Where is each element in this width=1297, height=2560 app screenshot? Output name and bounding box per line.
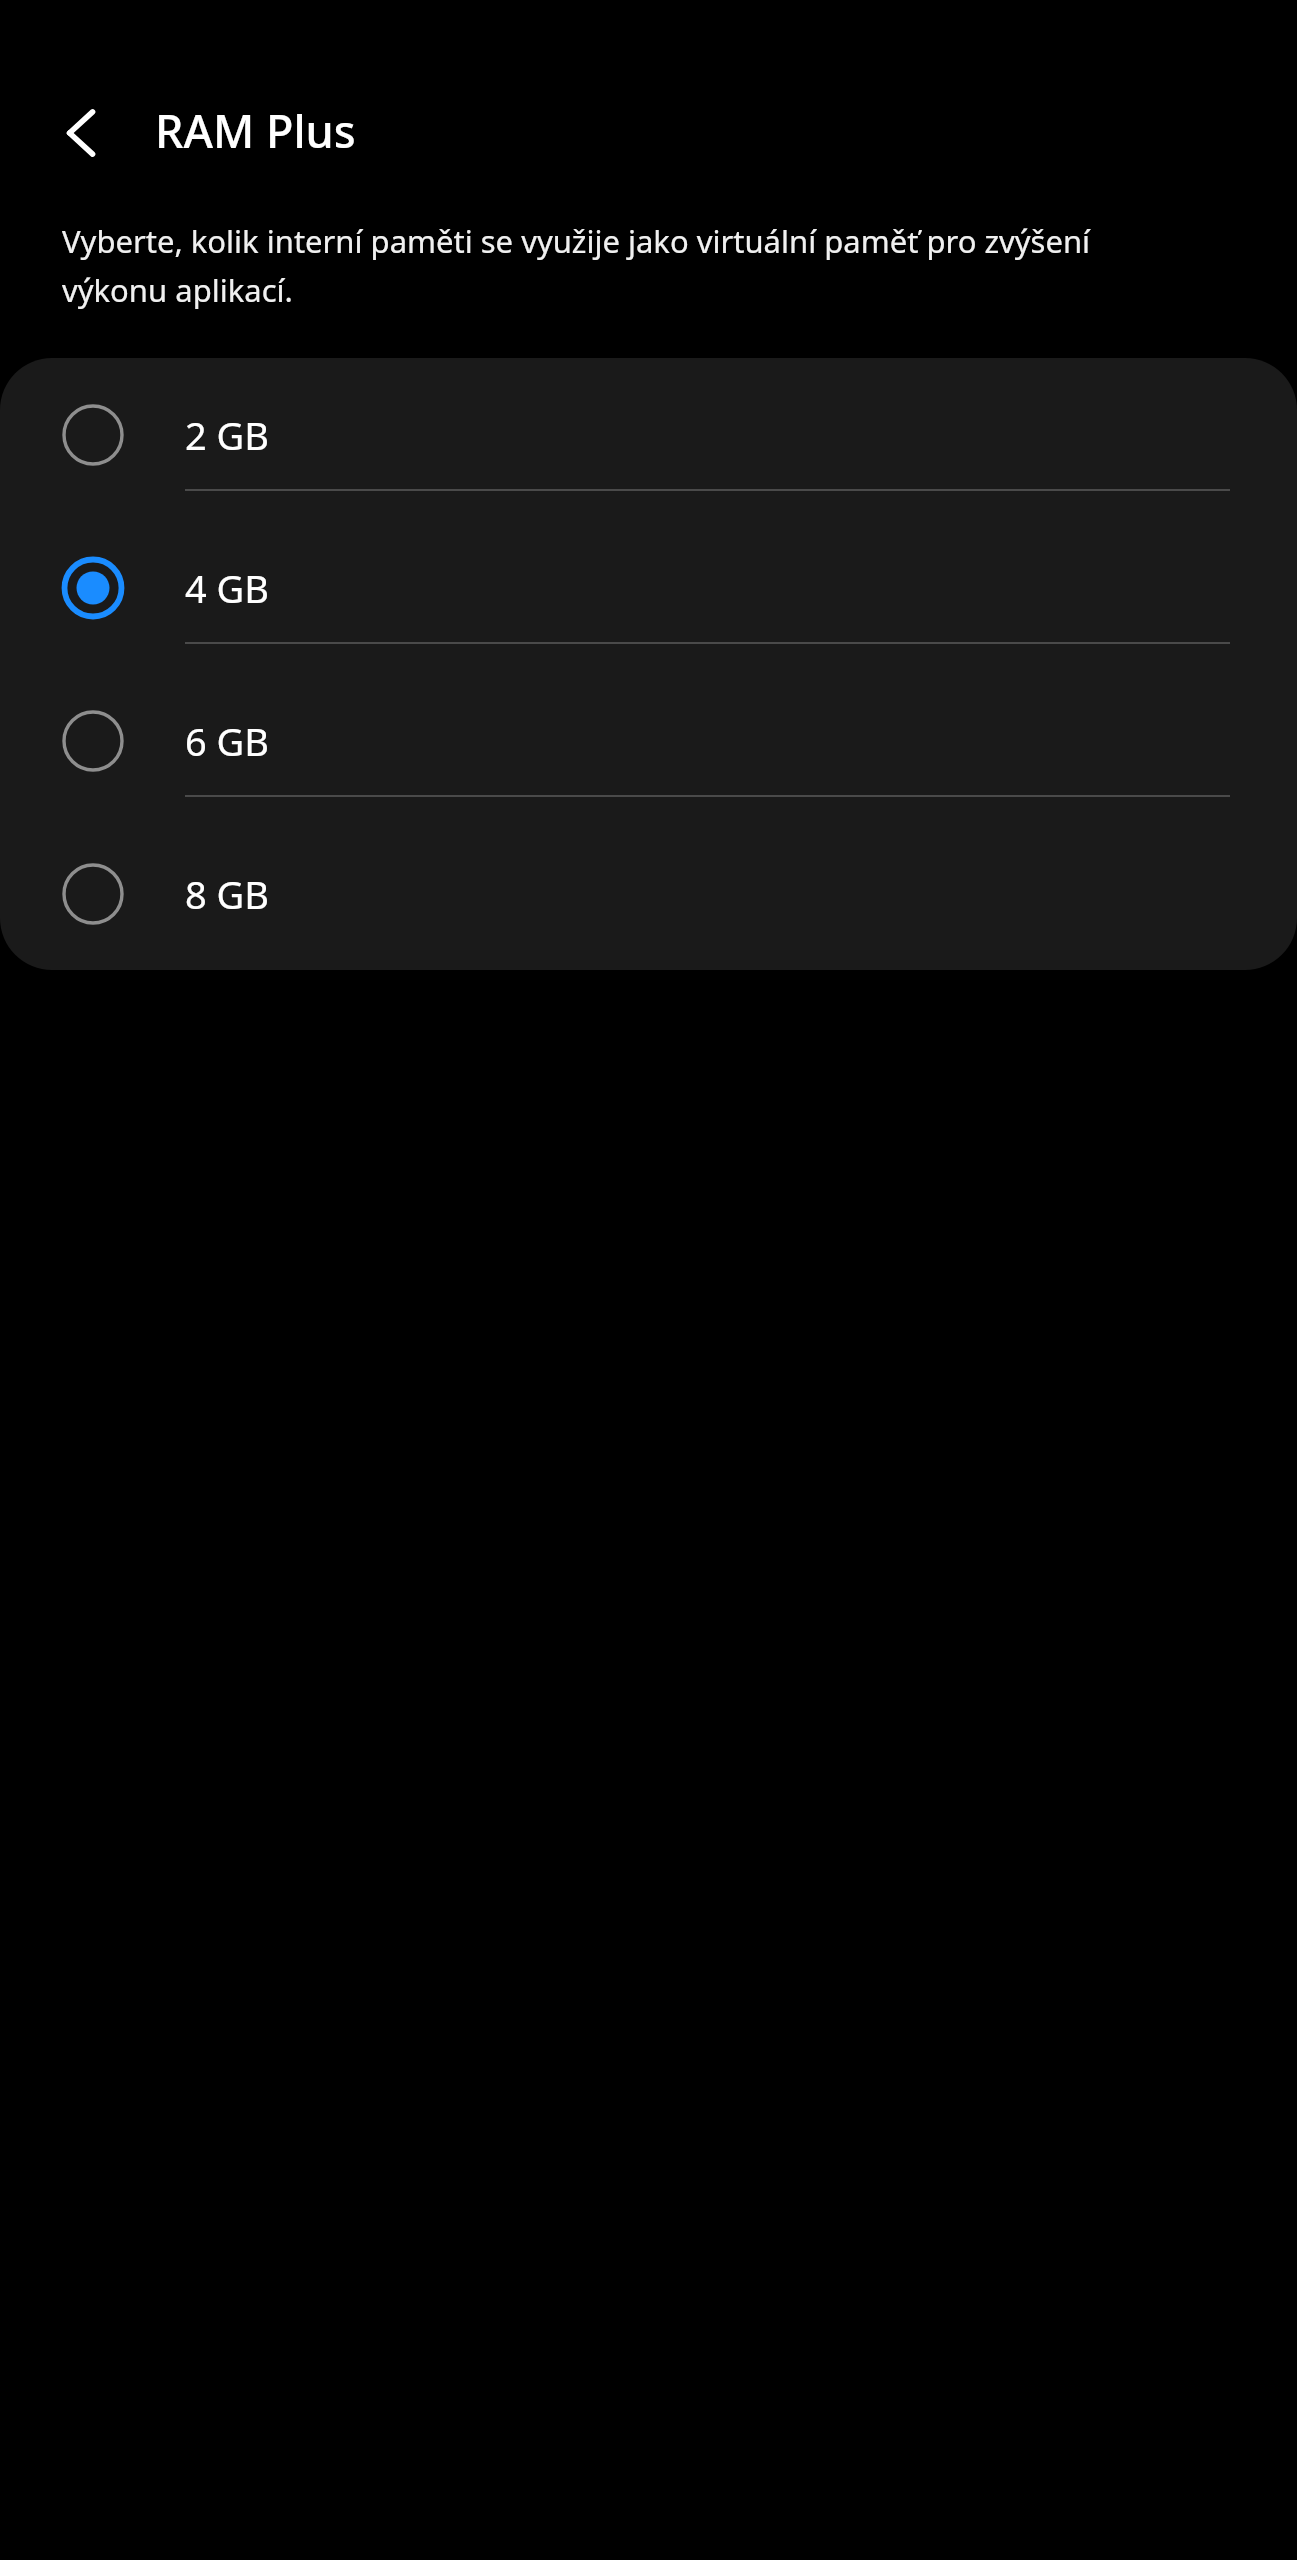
staticText: Vyberte, kolik interní paměti se využije…: [62, 215, 1147, 313]
staticText: 8 GB: [185, 868, 269, 920]
button[interactable]: 8 GB: [0, 817, 1297, 970]
staticText: 6 GB: [185, 715, 269, 767]
button[interactable]: Back: [44, 94, 122, 172]
button[interactable]: 6 GB: [0, 664, 1297, 817]
button[interactable]: 2 GB: [0, 358, 1297, 511]
staticText: 4 GB: [185, 562, 269, 614]
staticText: 2 GB: [185, 409, 269, 461]
button[interactable]: 4 GB: [0, 511, 1297, 664]
staticText: RAM Plus: [155, 100, 356, 161]
